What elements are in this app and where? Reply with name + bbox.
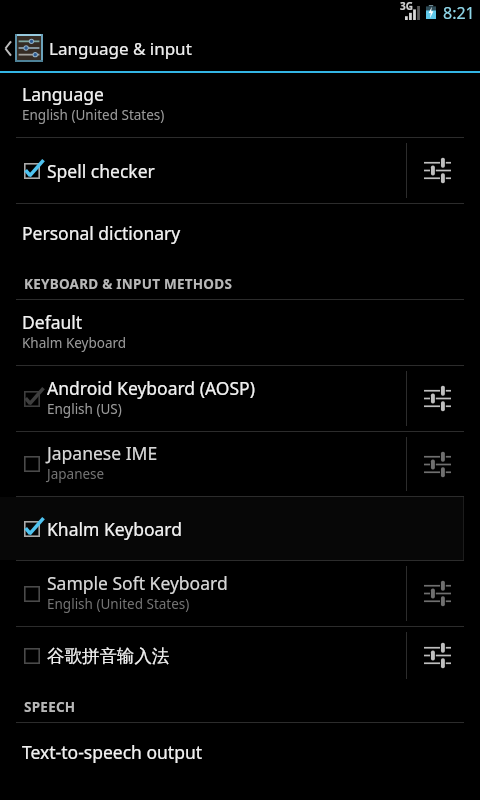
button[interactable]: Sample Soft Keyboard [0, 561, 480, 626]
staticText: Text-to-speech output [22, 740, 203, 764]
staticText: English (US) [47, 400, 122, 418]
staticText: 谷歌拼音输入法 [47, 645, 170, 667]
button[interactable]: Settings [406, 138, 480, 203]
button[interactable]: Japanese IME [0, 432, 480, 496]
button[interactable]: Android Keyboard (AOSP) [0, 366, 480, 431]
staticText: Spell checker [47, 159, 155, 183]
button[interactable]: Khalm Keyboard [0, 497, 480, 560]
button[interactable]: 谷歌拼音输入法 [0, 627, 480, 684]
staticText: Language & input [49, 37, 192, 60]
button[interactable]: Language [0, 73, 480, 137]
staticText: 3G [400, 0, 413, 13]
button[interactable]: Settings [406, 432, 480, 496]
staticText: 8:21 [443, 2, 475, 24]
staticText: English (United States) [22, 106, 165, 124]
staticText: Personal dictionary [22, 221, 181, 245]
staticText: Sample Soft Keyboard [47, 571, 228, 595]
staticText: Default [22, 310, 83, 334]
staticText: Japanese IME [47, 441, 158, 465]
staticText: KEYBOARD & INPUT METHODS [24, 275, 233, 293]
button[interactable]: Settings [406, 366, 480, 431]
button[interactable]: Settings [406, 561, 480, 626]
button[interactable]: Navigate up [0, 25, 49, 71]
staticText: English (United States) [47, 595, 190, 613]
staticText: SPEECH [24, 698, 76, 716]
staticText: Language [22, 82, 104, 106]
button[interactable]: Personal dictionary [0, 204, 480, 261]
button[interactable]: Default [0, 300, 480, 365]
staticText: Khalm Keyboard [22, 334, 127, 352]
button[interactable]: Spell checker [0, 138, 480, 203]
button[interactable]: Text-to-speech output [0, 723, 480, 780]
staticText: Khalm Keyboard [47, 517, 182, 541]
staticText: Japanese [47, 465, 105, 483]
staticText: Android Keyboard (AOSP) [47, 376, 255, 400]
button[interactable]: Settings [406, 627, 480, 684]
